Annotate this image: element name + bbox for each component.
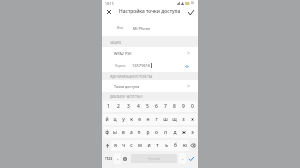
staticText: р xyxy=(146,129,150,136)
staticText: й xyxy=(105,116,109,123)
staticText: о xyxy=(155,129,158,136)
button[interactable]: Close xyxy=(105,8,113,16)
button[interactable]: д xyxy=(170,127,179,138)
button[interactable]: я xyxy=(111,140,119,151)
staticText: Пароль xyxy=(115,64,126,68)
staticText: Mi Phone xyxy=(133,26,151,31)
button[interactable]: Точка доступа xyxy=(102,80,198,92)
staticText: б xyxy=(174,142,177,149)
staticText: ЗАЩИТА xyxy=(110,41,122,45)
staticText: 13579616 xyxy=(132,63,151,68)
staticText: д xyxy=(173,129,177,136)
button[interactable]: Пароль xyxy=(102,59,198,72)
button[interactable]: 8 xyxy=(170,101,179,112)
button[interactable]: 9 xyxy=(179,101,188,112)
button[interactable]: ч xyxy=(119,140,127,151)
button[interactable]: ж xyxy=(179,127,188,138)
button[interactable]: WPA2 PSK xyxy=(102,47,198,59)
staticText: щ xyxy=(172,116,177,123)
staticText: . xyxy=(182,155,184,162)
staticText: г xyxy=(155,116,158,123)
staticText: с xyxy=(130,142,133,149)
staticText: 66 xyxy=(191,1,195,5)
button[interactable]: к xyxy=(127,114,135,125)
button[interactable]: а xyxy=(127,127,135,138)
button[interactable]: 0 xyxy=(188,101,197,112)
button[interactable]: п xyxy=(135,127,143,138)
staticText: э xyxy=(191,129,194,136)
button[interactable]: , xyxy=(114,153,121,164)
button[interactable]: Backspace xyxy=(189,139,197,152)
staticText: 8 xyxy=(173,103,176,110)
button[interactable]: м xyxy=(135,140,144,151)
staticText: м xyxy=(138,142,142,149)
staticText: 9 xyxy=(182,103,185,110)
button[interactable]: 6 xyxy=(152,101,161,112)
button[interactable]: с xyxy=(127,140,135,151)
button[interactable]: и xyxy=(144,140,153,151)
staticText: ы xyxy=(113,129,117,136)
staticText: ш xyxy=(163,116,168,123)
staticText: е xyxy=(138,116,141,123)
staticText: Точка доступа xyxy=(114,84,140,89)
staticText: Имя xyxy=(117,26,124,30)
staticText: з xyxy=(182,116,185,123)
button[interactable]: . xyxy=(179,153,186,164)
button[interactable]: ?123 xyxy=(103,152,114,165)
button[interactable]: Space xyxy=(131,154,177,163)
button[interactable]: ь xyxy=(162,140,171,151)
staticText: ?123 xyxy=(105,157,112,161)
button[interactable]: ф xyxy=(103,127,111,138)
button[interactable]: й xyxy=(103,114,111,125)
staticText: WPA2 PSK xyxy=(114,51,132,56)
button[interactable]: в xyxy=(119,127,127,138)
button[interactable]: 4 xyxy=(133,101,143,112)
staticText: л xyxy=(164,129,167,136)
button[interactable]: у xyxy=(119,114,127,125)
button[interactable]: т xyxy=(153,140,162,151)
staticText: 7 xyxy=(164,103,167,110)
button[interactable]: 2 xyxy=(113,101,123,112)
button[interactable]: н xyxy=(143,114,152,125)
button[interactable]: ш xyxy=(161,114,170,125)
button[interactable]: ю xyxy=(180,140,189,151)
button[interactable]: ц xyxy=(111,114,119,125)
staticText: ИДЕНТИФИКАЦИЯ УСТРОЙСТВА xyxy=(110,75,153,79)
button[interactable]: х xyxy=(188,114,197,125)
staticText: ф xyxy=(105,129,109,136)
button[interactable]: Enter xyxy=(186,152,197,165)
button[interactable]: з xyxy=(179,114,188,125)
button[interactable]: б xyxy=(171,140,180,151)
staticText: ю xyxy=(183,142,187,149)
staticText: 18:15 xyxy=(105,1,114,6)
button[interactable]: 1 xyxy=(103,101,113,112)
button[interactable]: Show password xyxy=(184,63,190,69)
button[interactable]: Имя xyxy=(102,17,198,36)
button[interactable]: э xyxy=(188,127,197,138)
staticText: а xyxy=(130,129,133,136)
staticText: я xyxy=(114,142,117,149)
staticText: к xyxy=(130,116,133,123)
button[interactable]: л xyxy=(161,127,170,138)
staticText: ж xyxy=(182,129,186,136)
button[interactable]: 3 xyxy=(123,101,133,112)
staticText: у xyxy=(122,116,125,123)
staticText: Настройка точки доступа xyxy=(119,8,181,15)
staticText: н xyxy=(146,116,150,123)
staticText: 6 xyxy=(155,103,158,110)
button[interactable]: Shift xyxy=(103,139,111,152)
button[interactable]: ы xyxy=(111,127,119,138)
button[interactable]: щ xyxy=(170,114,179,125)
staticText: 3 xyxy=(127,103,130,110)
button[interactable]: р xyxy=(143,127,152,138)
button[interactable]: 5 xyxy=(143,101,152,112)
button[interactable]: Emoji xyxy=(121,152,129,165)
staticText: 1 xyxy=(107,103,110,110)
button[interactable]: г xyxy=(152,114,161,125)
staticText: 0 xyxy=(191,103,194,110)
button[interactable]: Save xyxy=(187,8,195,16)
button[interactable]: е xyxy=(135,114,143,125)
button[interactable]: о xyxy=(152,127,161,138)
staticText: т xyxy=(156,142,159,149)
button[interactable]: 7 xyxy=(161,101,170,112)
